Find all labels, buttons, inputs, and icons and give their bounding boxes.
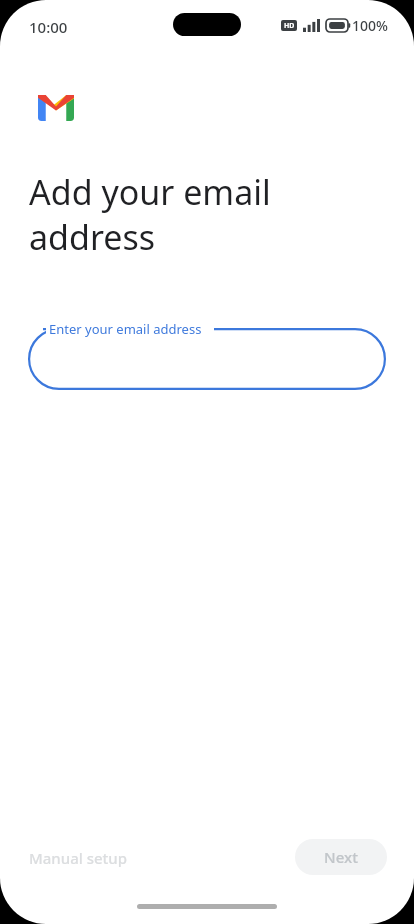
staticText: HD — [284, 21, 295, 31]
staticText: Next — [324, 847, 358, 867]
staticText: 100% — [352, 16, 388, 34]
other: Gmail — [38, 95, 74, 121]
button[interactable]: Next — [295, 839, 387, 875]
staticText: Enter your email address — [49, 320, 202, 338]
button[interactable]: Manual setup — [15, 841, 142, 875]
staticText: 10:00 — [29, 17, 68, 37]
button[interactable]: Enter your email address — [28, 328, 386, 390]
staticText: Manual setup — [29, 848, 128, 868]
staticText: Add your email address — [29, 169, 347, 260]
